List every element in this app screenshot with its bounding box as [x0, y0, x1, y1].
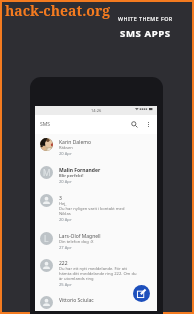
button[interactable]: 222	[35, 259, 157, 299]
staticText: SMS APPS	[120, 27, 171, 40]
staticText: Vittorio Sciulac	[59, 297, 94, 304]
staticText: Hej, Du har nyligen varit i kontakt med …	[59, 201, 125, 216]
staticText: 222	[59, 260, 68, 267]
staticText: Räksen	[59, 145, 73, 151]
button[interactable]: L	[35, 232, 157, 260]
staticText: 25 Apr	[59, 282, 72, 288]
button[interactable]: More options	[142, 118, 155, 131]
staticText: Karin Dalemo	[59, 139, 91, 146]
staticText: Malin Fornander	[59, 167, 101, 174]
button[interactable]: Karin Dalemo	[35, 138, 157, 166]
staticText: 20 Apr	[59, 217, 72, 223]
staticText: M	[43, 167, 51, 179]
button[interactable]: 3	[35, 194, 157, 234]
staticText: 14:26	[91, 108, 102, 113]
staticText: 27 Apr	[59, 245, 72, 251]
button[interactable]: Vittorio Sciulac	[35, 296, 157, 314]
staticText: Du har ett nytt meddelande. För att hämt…	[59, 266, 137, 281]
staticText: WHITE THEME FOR	[118, 15, 173, 22]
staticText: Blir perfekt!	[59, 173, 84, 179]
staticText: hack-cheat.org	[5, 1, 111, 20]
staticText: L	[44, 233, 49, 245]
staticText: Lars-Olof Magnell	[59, 233, 101, 240]
button[interactable]: M	[35, 166, 157, 194]
staticText: 20 Apr	[59, 151, 72, 157]
button[interactable]: Compose new message	[133, 285, 150, 302]
button[interactable]: Search	[128, 118, 141, 131]
staticText: Din telefon dog :X	[59, 239, 94, 245]
staticText: 20 Apr	[59, 179, 72, 185]
staticText: 3	[59, 195, 62, 202]
staticText: SMS	[40, 121, 51, 128]
